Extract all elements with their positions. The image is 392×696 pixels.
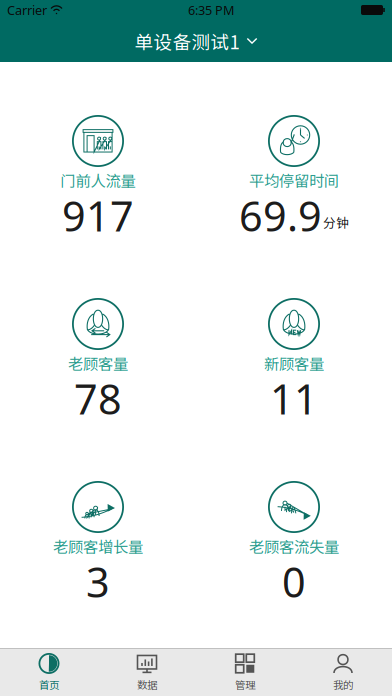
button[interactable]: 首页	[0, 646, 98, 696]
button[interactable]: 门前人流量	[0, 115, 196, 230]
staticText: 老顾客量	[68, 352, 128, 374]
staticText: 平均停留时间	[249, 169, 339, 191]
staticText: 3	[86, 553, 110, 609]
button[interactable]: 平均停留时间	[196, 115, 392, 230]
staticText: 老顾客增长量	[53, 535, 143, 557]
staticText: 0	[282, 553, 306, 609]
staticText: 分钟	[323, 213, 349, 231]
button[interactable]: 新顾客量	[196, 298, 392, 413]
staticText: 6:35 PM	[188, 1, 234, 19]
button[interactable]: 我的	[294, 646, 392, 696]
button[interactable]: 数据	[98, 646, 196, 696]
staticText: 首页	[39, 677, 59, 692]
staticText: 单设备测试1	[134, 27, 239, 54]
staticText: 新顾客量	[264, 352, 324, 374]
staticText: Carrier	[7, 1, 47, 19]
button[interactable]: 单设备测试1	[0, 20, 392, 62]
button[interactable]: 老顾客增长量	[0, 481, 196, 596]
staticText: 917	[62, 187, 134, 243]
button[interactable]: 老顾客量	[0, 298, 196, 413]
button[interactable]: 管理	[196, 646, 294, 696]
staticText: 我的	[333, 677, 353, 692]
staticText: 管理	[235, 677, 255, 692]
staticText: 数据	[137, 677, 157, 692]
staticText: 门前人流量	[60, 169, 135, 191]
staticText: 69.9	[239, 187, 322, 243]
staticText: 11	[270, 370, 318, 426]
staticText: 老顾客流失量	[249, 535, 339, 557]
button[interactable]: 老顾客流失量	[196, 481, 392, 596]
staticText: 78	[74, 370, 122, 426]
